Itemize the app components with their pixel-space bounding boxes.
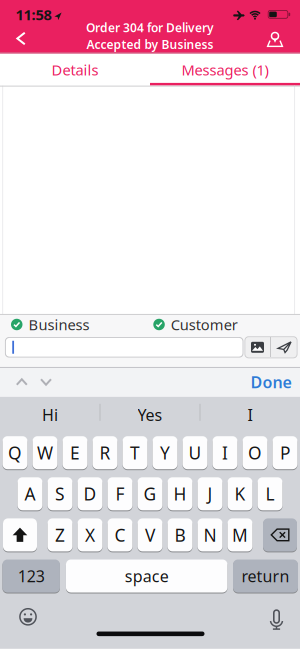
button[interactable]: G xyxy=(137,477,162,510)
button[interactable]: Shift xyxy=(3,518,37,551)
staticText: A xyxy=(24,482,35,505)
button[interactable]: Back xyxy=(6,20,36,56)
staticText: D xyxy=(83,482,96,505)
button[interactable]: Next field xyxy=(34,369,58,395)
button[interactable]: F xyxy=(107,477,132,510)
staticText: W xyxy=(37,441,53,464)
button[interactable]: Previous field xyxy=(10,369,34,395)
staticText: space xyxy=(125,565,169,587)
button[interactable]: D xyxy=(77,477,102,510)
staticText: Messages (1) xyxy=(181,60,268,79)
staticText: 123 xyxy=(18,565,45,587)
button[interactable]: Messages (1) xyxy=(150,54,300,86)
staticText: O xyxy=(248,441,262,464)
button[interactable]: space xyxy=(66,559,227,592)
button[interactable]: Q xyxy=(2,436,27,469)
button[interactable]: T xyxy=(122,436,147,469)
button[interactable]: Y xyxy=(152,436,177,469)
staticText: Order 304 for Delivery xyxy=(86,20,214,35)
staticText: H xyxy=(173,482,186,505)
button[interactable]: V xyxy=(137,518,162,551)
button[interactable]: return xyxy=(233,559,298,592)
staticText: J xyxy=(207,482,212,505)
button[interactable]: B xyxy=(167,518,192,551)
staticText: F xyxy=(115,482,124,505)
staticText: Done xyxy=(250,371,291,393)
button[interactable]: Attach photo xyxy=(245,336,270,358)
staticText: Accepted by Business xyxy=(86,36,213,52)
button[interactable]: L xyxy=(257,477,282,510)
staticText: Hi xyxy=(42,404,58,425)
button[interactable]: Track order on map xyxy=(258,24,292,54)
button[interactable]: X xyxy=(77,518,102,551)
staticText: N xyxy=(203,523,216,546)
button[interactable]: A xyxy=(17,477,42,510)
button[interactable]: S xyxy=(47,477,72,510)
staticText: S xyxy=(55,482,65,505)
button[interactable]: E xyxy=(62,436,87,469)
staticText: Details xyxy=(51,60,98,79)
button[interactable]: N xyxy=(197,518,222,551)
staticText: I xyxy=(222,441,228,464)
button[interactable]: P xyxy=(272,436,297,469)
staticText: C xyxy=(114,523,125,546)
button[interactable]: Yes xyxy=(102,401,198,429)
button[interactable]: C xyxy=(107,518,132,551)
button[interactable]: Send message xyxy=(272,336,297,358)
staticText: Q xyxy=(8,441,22,464)
button[interactable]: Emoji xyxy=(13,602,43,632)
button[interactable]: Dictate xyxy=(261,605,291,635)
staticText: P xyxy=(280,441,290,464)
button[interactable]: W xyxy=(32,436,57,469)
button[interactable]: I xyxy=(212,436,237,469)
button[interactable]: 123 xyxy=(2,559,60,592)
staticText: R xyxy=(99,441,110,464)
button[interactable]: Done xyxy=(243,369,299,395)
button[interactable]: Hi xyxy=(2,401,98,429)
staticText: Business xyxy=(28,315,89,334)
staticText: K xyxy=(234,482,245,505)
button[interactable]: H xyxy=(167,477,192,510)
staticText: M xyxy=(232,523,248,546)
staticText: 11:58 xyxy=(15,5,51,24)
staticText: return xyxy=(241,565,289,587)
button[interactable]: I xyxy=(202,401,298,429)
staticText: B xyxy=(174,523,185,546)
staticText: X xyxy=(85,523,95,546)
button[interactable]: Z xyxy=(47,518,72,551)
staticText: L xyxy=(265,482,274,505)
staticText: Customer xyxy=(171,315,238,334)
staticText: T xyxy=(130,441,140,464)
button[interactable]: R xyxy=(92,436,117,469)
button[interactable]: U xyxy=(182,436,207,469)
button[interactable]: K xyxy=(227,477,252,510)
button[interactable]: Delete xyxy=(263,518,297,551)
button[interactable]: M xyxy=(227,518,252,551)
staticText: U xyxy=(188,441,201,464)
staticText: I xyxy=(247,404,252,425)
staticText: V xyxy=(145,523,155,546)
staticText: G xyxy=(143,482,156,505)
staticText: Yes xyxy=(137,404,162,425)
button[interactable]: J xyxy=(197,477,222,510)
button[interactable]: Details xyxy=(0,54,150,86)
button[interactable]: O xyxy=(242,436,267,469)
staticText: Y xyxy=(160,441,170,464)
staticText: E xyxy=(70,441,80,464)
staticText: Z xyxy=(55,523,65,546)
